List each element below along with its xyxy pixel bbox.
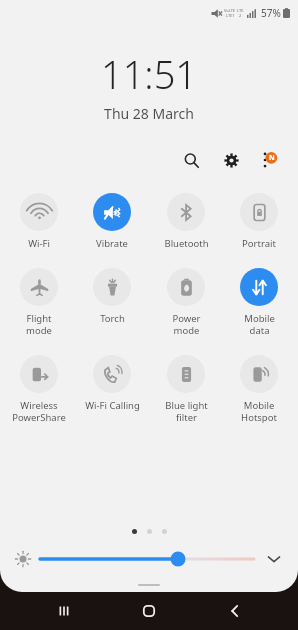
button[interactable]: Bluetooth [151,193,221,250]
staticText: Mobile Hotspot [241,399,277,424]
staticText: Wi-Fi [28,237,50,250]
staticText: 57% [261,6,281,20]
staticText: Thu 28 March [0,104,298,123]
button[interactable]: Mobile Hotspot [224,355,294,424]
button[interactable]: Blue light filter [151,355,221,424]
staticText: Mobile data [244,312,275,337]
staticText: Torch [100,312,125,325]
button[interactable]: Wi-Fi [4,193,74,250]
button[interactable]: Settings [216,145,246,175]
staticText: N [269,153,275,163]
button[interactable]: Home [127,592,171,630]
button[interactable]: Expand brightness settings [262,547,286,571]
staticText: Wireless PowerShare [12,399,66,424]
button[interactable]: Portrait [224,193,294,250]
staticText: Portrait [242,237,276,250]
button[interactable]: Vibrate [77,193,147,250]
staticText: Flight mode [26,312,52,337]
staticText: LTE [237,8,244,13]
button[interactable] [40,548,254,570]
button[interactable]: Power mode [151,268,221,337]
staticText: 2 [239,13,242,18]
button[interactable]: Mobile data [224,268,294,337]
staticText: Power mode [172,312,201,337]
button[interactable]: Search [176,145,206,175]
staticText: VoLTE [224,8,236,13]
staticText: Wi-Fi Calling [85,399,140,412]
staticText: Blue light filter [165,399,208,424]
button[interactable]: Back [213,592,257,630]
staticText: Vibrate [96,237,128,250]
button[interactable]: Auto brightness [12,548,34,570]
button[interactable]: Wireless PowerShare [4,355,74,424]
button[interactable]: Torch [77,268,147,325]
button[interactable]: Recents [42,592,86,630]
staticText: Bluetooth [164,237,209,250]
button[interactable]: More options [254,145,284,175]
button[interactable]: Flight mode [4,268,74,337]
button[interactable]: Wi-Fi Calling [77,355,147,412]
staticText: LTE1 [226,13,235,18]
staticText: 11:51 [0,48,298,100]
